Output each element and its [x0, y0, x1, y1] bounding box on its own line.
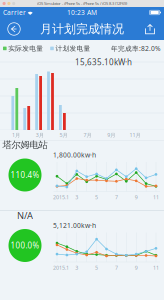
button[interactable]: Back: [2, 18, 26, 39]
staticText: 2015.1: [53, 264, 69, 271]
staticText: 11: [153, 194, 159, 201]
staticText: 3: [75, 194, 78, 201]
staticText: 7: [115, 264, 118, 271]
staticText: 5: [95, 194, 98, 201]
staticText: 7: [115, 194, 118, 201]
staticText: 3月: [36, 131, 44, 138]
staticText: 计划发电量: [55, 44, 90, 52]
staticText: N/A: [17, 209, 33, 222]
staticText: 9: [135, 194, 138, 201]
staticText: 5: [95, 264, 98, 271]
staticText: 9月: [107, 131, 115, 138]
staticText: 5月: [60, 131, 68, 138]
staticText: iOS Simulator - iPhone 5s - iPhone 5s / …: [37, 1, 127, 6]
staticText: 年完成率:82.0%: [111, 44, 161, 53]
staticText: 11月: [129, 131, 140, 138]
staticText: Carrier: [3, 8, 26, 17]
staticText: 100.0%: [10, 240, 39, 251]
button[interactable]: Share: [138, 18, 162, 39]
staticText: 实际发电量: [8, 44, 43, 52]
staticText: 11: [153, 264, 159, 271]
staticText: 10:23 AM: [67, 8, 97, 17]
staticText: 1,800.00kw·h: [53, 151, 96, 159]
staticText: 2015.1: [53, 194, 69, 201]
staticText: 3: [75, 264, 78, 271]
staticText: 110.4%: [10, 170, 39, 180]
staticText: 15,635.10kW·h: [75, 57, 132, 67]
staticText: 月计划完成情况: [40, 22, 124, 36]
staticText: 1月: [12, 131, 20, 138]
staticText: 9: [135, 264, 138, 271]
staticText: 5,121.00kw·h: [53, 221, 96, 230]
staticText: 7月: [83, 131, 91, 138]
staticText: 塔尔姆电站: [2, 139, 47, 151]
